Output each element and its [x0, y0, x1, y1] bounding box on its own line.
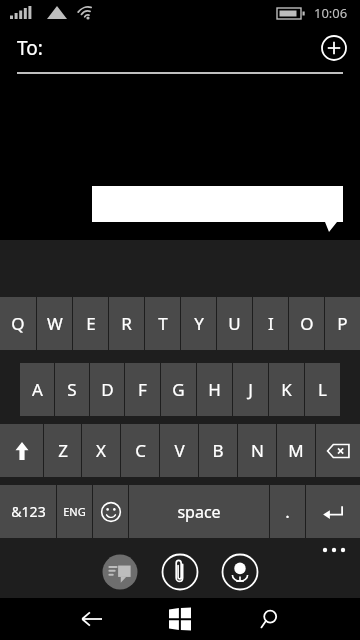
button[interactable]: S [55, 363, 89, 416]
button[interactable]: G [161, 363, 196, 416]
staticText: V [174, 439, 185, 462]
button[interactable]: K [269, 363, 304, 416]
staticText: W [47, 312, 63, 335]
staticText: T [158, 312, 168, 335]
button[interactable]: Attach [161, 553, 199, 591]
button[interactable]: . [270, 485, 305, 538]
staticText: To: [17, 35, 43, 61]
button[interactable]: X [82, 424, 120, 477]
staticText: &123 [11, 502, 46, 521]
button[interactable]: Add contact [318, 32, 350, 64]
button[interactable]: ENG [57, 485, 92, 538]
staticText: S [67, 378, 77, 401]
button[interactable]: Search [244, 598, 294, 640]
staticText: D [101, 378, 114, 401]
button[interactable]: Voice [221, 553, 259, 591]
button[interactable]: More options [316, 540, 352, 564]
button[interactable]: U [217, 297, 252, 350]
staticText: A [32, 378, 43, 401]
button[interactable]: space [129, 485, 269, 538]
staticText: X [96, 439, 106, 462]
button[interactable]: V [160, 424, 198, 477]
button[interactable]: T [145, 297, 180, 350]
button[interactable]: Backspace [316, 424, 360, 477]
staticText: F [138, 378, 147, 401]
staticText: E [86, 312, 96, 335]
staticText: K [281, 378, 292, 401]
button[interactable]: Emoji [93, 485, 128, 538]
staticText: B [212, 439, 224, 462]
staticText: 10:06 [314, 4, 348, 22]
staticText: O [300, 312, 314, 335]
button[interactable]: F [125, 363, 160, 416]
button[interactable]: Q [0, 297, 36, 350]
button[interactable]: Shift [0, 424, 43, 477]
button[interactable]: Back [66, 598, 116, 640]
button[interactable]: E [73, 297, 108, 350]
staticText: J [248, 378, 253, 401]
button[interactable]: C [121, 424, 159, 477]
button[interactable]: D [90, 363, 124, 416]
button[interactable]: W [37, 297, 72, 350]
button[interactable]: Start [155, 598, 205, 640]
staticText: P [337, 312, 348, 335]
staticText: C [135, 439, 146, 462]
button[interactable]: B [199, 424, 237, 477]
button[interactable]: H [197, 363, 232, 416]
button[interactable]: Enter [306, 485, 360, 538]
staticText: . [285, 500, 290, 523]
button[interactable]: &123 [0, 485, 56, 538]
button[interactable]: J [233, 363, 268, 416]
staticText: ENG [63, 504, 86, 519]
staticText: Y [194, 312, 204, 335]
staticText: N [251, 439, 264, 462]
button[interactable]: L [305, 363, 340, 416]
staticText: R [121, 312, 132, 335]
staticText: Z [58, 439, 68, 462]
staticText: U [228, 312, 241, 335]
staticText: space [177, 501, 221, 523]
button[interactable]: A [20, 363, 54, 416]
staticText: L [318, 378, 327, 401]
button[interactable]: Handwriting [101, 553, 139, 591]
button[interactable]: Z [44, 424, 81, 477]
button[interactable]: M [277, 424, 315, 477]
staticText: M [288, 439, 304, 462]
button[interactable]: Y [181, 297, 216, 350]
button[interactable]: R [109, 297, 144, 350]
staticText: H [208, 378, 221, 401]
staticText: Q [11, 312, 25, 335]
button[interactable]: I [253, 297, 288, 350]
staticText: G [172, 378, 185, 401]
button[interactable]: N [238, 424, 276, 477]
button[interactable]: O [289, 297, 324, 350]
button[interactable]: P [325, 297, 360, 350]
staticText: I [268, 312, 274, 335]
